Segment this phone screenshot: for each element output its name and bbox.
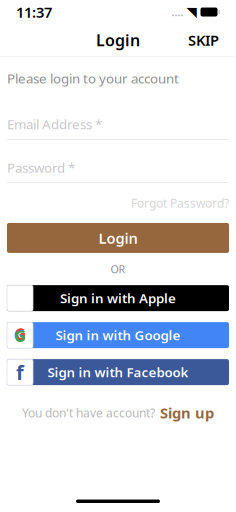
staticText: Sign in with Apple bbox=[60, 289, 176, 307]
staticText: Sign in with Facebook bbox=[47, 363, 188, 381]
staticText: Forgot Password? bbox=[131, 195, 229, 211]
staticText: f bbox=[16, 359, 24, 385]
staticText: G bbox=[14, 326, 26, 347]
button[interactable]: Login bbox=[7, 223, 229, 253]
staticText: ◥ bbox=[186, 4, 196, 19]
staticText: Password * bbox=[7, 159, 75, 176]
staticText: G bbox=[14, 324, 26, 345]
staticText: Login bbox=[96, 29, 140, 51]
staticText: Sign up bbox=[160, 403, 214, 423]
staticText: OR bbox=[110, 262, 125, 276]
button[interactable]: Sign in with Apple bbox=[7, 285, 229, 311]
button[interactable]: You don't have account? bbox=[7, 398, 229, 428]
staticText: Email Address * bbox=[7, 115, 102, 133]
button[interactable]: Sign in with Facebook bbox=[7, 359, 229, 385]
button[interactable]: Forgot Password? bbox=[131, 191, 229, 215]
staticText: SKIP bbox=[188, 30, 219, 50]
staticText: 11:37 bbox=[16, 2, 52, 22]
staticText: You don't have account? bbox=[22, 405, 155, 421]
staticText: Login bbox=[98, 228, 137, 248]
button[interactable]: SKIP bbox=[178, 24, 229, 56]
button[interactable]: Sign in with Google bbox=[7, 322, 229, 348]
staticText: .... bbox=[171, 5, 183, 19]
staticText: Sign in with Google bbox=[55, 326, 180, 344]
staticText: Please login to your account bbox=[7, 69, 179, 87]
staticText: G bbox=[15, 323, 27, 344]
